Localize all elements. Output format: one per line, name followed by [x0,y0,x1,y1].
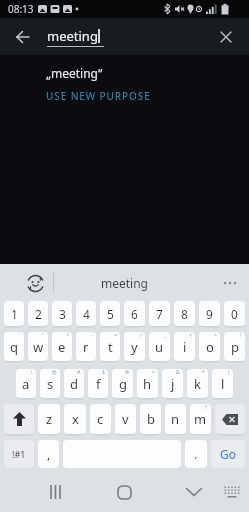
staticText: r [83,338,89,356]
button[interactable]: 6 [124,301,145,326]
staticText: s [47,375,54,393]
button[interactable]: w [28,332,48,361]
button[interactable]: r [76,332,96,361]
button[interactable]: h [137,369,158,398]
button[interactable]: u [149,332,170,361]
staticText: meeting [47,27,98,45]
button[interactable]: o [199,332,220,361]
staticText: + [66,332,69,339]
staticText: _ [164,332,167,339]
button[interactable]: z [38,404,60,434]
button[interactable]: d [64,369,84,398]
staticText: „meeting“ [46,65,103,81]
button[interactable] [181,479,207,505]
button[interactable]: g [112,369,133,398]
button[interactable]: 0 [224,301,245,326]
staticText: t [108,338,113,356]
button[interactable]: q [4,332,24,361]
staticText: ^ [152,369,155,376]
button[interactable] [24,272,46,294]
staticText: h [143,375,152,393]
button[interactable]: USE NEW PURPOSE [46,89,151,103]
button[interactable]: meeting [101,275,148,291]
staticText: 9 [206,306,213,322]
staticText: w [33,338,44,356]
button[interactable] [215,404,245,434]
button[interactable]: Go [211,440,245,468]
button[interactable]: b [140,404,161,434]
button[interactable] [42,479,68,505]
staticText: g [119,375,127,393]
button[interactable]: 3 [52,301,72,326]
button[interactable]: 2 [28,301,48,326]
staticText: 8 [181,306,188,322]
button[interactable] [12,26,34,48]
staticText: 08:13 [8,2,34,16]
button[interactable]: f [88,369,108,398]
staticText: k [194,375,201,393]
button[interactable]: m [190,404,211,434]
button[interactable]: c [90,404,111,434]
button[interactable]: l [212,369,233,398]
staticText: $ [102,369,105,376]
button[interactable]: s [40,369,60,398]
button[interactable]: 8 [174,301,195,326]
staticText: > [214,332,217,339]
button[interactable]: v [115,404,136,434]
button[interactable]: 5 [100,301,120,326]
button[interactable] [215,26,237,48]
staticText: l [221,375,225,393]
staticText: 1 [11,306,18,322]
button[interactable]: j [162,369,183,398]
staticText: a [22,375,30,393]
staticText: m [194,410,207,428]
button[interactable]: 4 [76,301,96,326]
staticText: n [171,410,180,428]
button[interactable] [111,479,137,505]
staticText: y [131,338,138,356]
button[interactable]: !#1 [4,440,34,468]
staticText: x [72,410,79,428]
staticText: v [122,410,129,428]
button[interactable]: n [165,404,186,434]
staticText: / [140,332,142,339]
button[interactable]: t [100,332,120,361]
staticText: e [58,338,66,356]
staticText: ( [228,369,230,376]
staticText: i [183,338,187,356]
button[interactable]: e [52,332,72,361]
staticText: !#1 [12,448,26,460]
staticText: 0 [231,306,238,322]
staticText: ' [19,332,21,339]
staticText: u [155,338,164,356]
button[interactable] [221,481,243,503]
staticText: j [171,375,175,393]
staticText: @ [52,369,57,376]
staticText: & [176,369,180,376]
staticText: % [125,369,130,376]
staticText: USE NEW PURPOSE [46,89,151,103]
button[interactable]: x [64,404,86,434]
staticText: # [77,369,81,376]
staticText: meeting [101,275,148,291]
button[interactable]: i [174,332,195,361]
button[interactable]: 9 [199,301,220,326]
staticText: 4 [83,306,90,322]
button[interactable]: k [187,369,208,398]
button[interactable]: , [38,440,59,468]
staticText: , [47,446,51,462]
button[interactable]: a [16,369,36,398]
staticText: z [46,410,53,428]
staticText: " [42,332,45,339]
button[interactable] [4,404,34,434]
staticText: 2 [35,306,42,322]
button[interactable]: y [124,332,145,361]
button[interactable]: 1 [4,301,24,326]
staticText: 7 [156,306,163,322]
button[interactable]: . [185,440,207,468]
button[interactable]: p [224,332,245,361]
staticText: 5 [107,306,114,322]
staticText: p [231,338,239,356]
button[interactable]: 7 [149,301,170,326]
